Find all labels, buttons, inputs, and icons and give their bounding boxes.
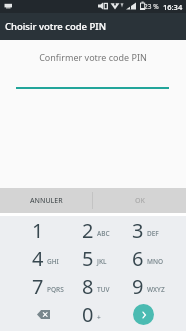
staticText: 16:34 <box>163 2 183 12</box>
button[interactable]: 4 <box>18 244 68 272</box>
staticText: ANNULER <box>30 196 63 206</box>
staticText: Confirmer votre code PIN <box>0 51 186 63</box>
staticText: DEF <box>147 229 159 238</box>
button[interactable]: Effacer <box>18 300 68 328</box>
button[interactable]: 8 <box>68 272 118 300</box>
button[interactable]: 0 <box>68 300 118 328</box>
staticText: 3 <box>132 217 144 244</box>
button[interactable]: Choisir votre code PIN <box>0 13 186 40</box>
button[interactable]: ANNULER <box>0 188 92 213</box>
staticText: JKL <box>97 257 107 266</box>
staticText: TUV <box>97 285 110 294</box>
button[interactable]: 3 <box>118 216 168 244</box>
staticText: 5 <box>82 245 94 272</box>
staticText: 23 % <box>144 2 159 11</box>
staticText: + <box>97 313 101 322</box>
staticText: 7 <box>32 273 44 300</box>
button[interactable]: 7 <box>18 272 68 300</box>
button[interactable]: Valider <box>118 300 168 328</box>
staticText: 1 <box>32 217 44 244</box>
staticText: Choisir votre code PIN <box>5 20 107 33</box>
staticText: 0 <box>82 301 94 328</box>
button[interactable]: 9 <box>118 272 168 300</box>
button[interactable]: OK <box>93 188 186 213</box>
button[interactable]: 6 <box>118 244 168 272</box>
button[interactable]: 1 <box>18 216 68 244</box>
staticText: OK <box>135 196 145 206</box>
staticText: 9 <box>132 273 144 300</box>
staticText: WXYZ <box>147 285 165 294</box>
button[interactable]: 2 <box>68 216 118 244</box>
staticText: PQRS <box>47 285 64 294</box>
staticText: ABC <box>97 229 110 238</box>
staticText: 2 <box>82 217 94 244</box>
button[interactable]: 5 <box>68 244 118 272</box>
staticText: 4 <box>32 245 44 272</box>
staticText: GHI <box>47 257 59 266</box>
staticText: 6 <box>132 245 144 272</box>
staticText: MNO <box>147 257 164 266</box>
staticText: 8 <box>82 273 94 300</box>
